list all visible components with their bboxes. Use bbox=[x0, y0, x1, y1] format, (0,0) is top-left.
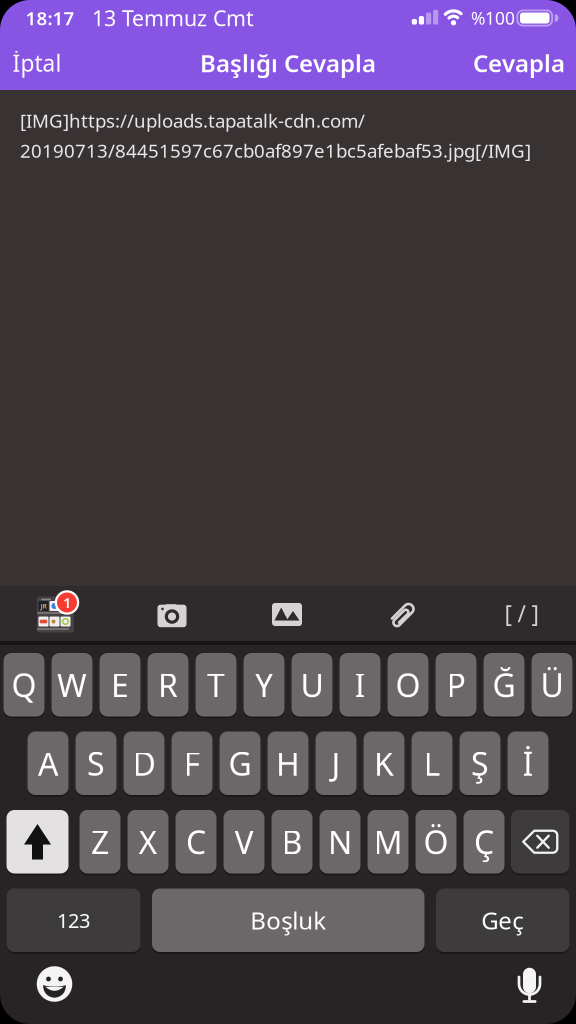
button[interactable]: Shift bbox=[6, 810, 68, 873]
staticText: %100 bbox=[471, 6, 515, 29]
staticText: Cevapla bbox=[473, 47, 565, 79]
staticText: 1 bbox=[63, 593, 71, 612]
staticText: E bbox=[111, 663, 129, 706]
button[interactable]: N bbox=[319, 810, 360, 873]
staticText: T bbox=[207, 663, 225, 706]
button[interactable]: E bbox=[99, 653, 140, 716]
button[interactable]: Geç bbox=[436, 888, 569, 952]
button[interactable]: R bbox=[147, 653, 188, 716]
staticText: Geç bbox=[481, 904, 524, 936]
button[interactable]: O bbox=[387, 653, 428, 716]
button[interactable]: B bbox=[271, 810, 312, 873]
staticText: B bbox=[281, 820, 302, 863]
staticText: [IMG]https://uploads.tapatalk-cdn.com/ bbox=[20, 108, 365, 133]
button[interactable]: İ bbox=[507, 731, 548, 795]
staticText: Ğ bbox=[492, 663, 515, 706]
button[interactable]: Q bbox=[3, 653, 44, 716]
staticText: İ bbox=[522, 742, 533, 784]
staticText: W bbox=[57, 663, 87, 706]
button[interactable]: I bbox=[339, 653, 380, 716]
button[interactable]: Cevapla bbox=[473, 47, 565, 79]
staticText: JR bbox=[40, 602, 46, 610]
staticText: R bbox=[158, 663, 178, 706]
button[interactable]: BBCode bbox=[504, 598, 538, 628]
button[interactable]: Son ekran görüntüsünü ekle bbox=[33, 591, 83, 635]
staticText: 123 bbox=[57, 907, 90, 934]
button[interactable]: Z bbox=[79, 810, 120, 873]
staticText: 18:17 bbox=[25, 6, 74, 30]
button[interactable]: H bbox=[267, 731, 308, 795]
staticText: N bbox=[328, 820, 352, 863]
staticText: K bbox=[374, 742, 394, 784]
staticText: 20190713/84451597c67cb0af897e1bc5afebaf5… bbox=[20, 138, 531, 163]
button[interactable]: Dosya ekle bbox=[389, 601, 415, 629]
staticText: G bbox=[228, 742, 251, 784]
staticText: L bbox=[423, 742, 440, 784]
staticText: İptal bbox=[12, 48, 61, 78]
button[interactable]: P bbox=[435, 653, 476, 716]
button[interactable]: Kamera bbox=[157, 602, 186, 627]
button[interactable]: Sil bbox=[511, 810, 569, 873]
button[interactable]: Ğ bbox=[483, 653, 524, 716]
button[interactable]: Emoji bbox=[36, 966, 72, 1002]
staticText: X bbox=[138, 820, 157, 863]
staticText: Ü bbox=[540, 663, 563, 706]
button[interactable]: Dikte bbox=[519, 968, 540, 1003]
button[interactable]: Ö bbox=[415, 810, 456, 873]
button[interactable]: U bbox=[291, 653, 332, 716]
button[interactable]: Ü bbox=[531, 653, 572, 716]
button[interactable]: K bbox=[363, 731, 404, 795]
staticText: O bbox=[395, 663, 420, 706]
button[interactable]: G bbox=[219, 731, 260, 795]
button[interactable]: F bbox=[171, 731, 212, 795]
staticText: D bbox=[132, 742, 155, 784]
staticText: P bbox=[446, 663, 465, 706]
staticText: Ö bbox=[423, 820, 448, 863]
button[interactable]: J bbox=[315, 731, 356, 795]
staticText: J bbox=[331, 742, 340, 784]
staticText: Ç bbox=[474, 820, 494, 863]
staticText: Y bbox=[255, 663, 273, 706]
button[interactable]: M bbox=[367, 810, 408, 873]
staticText: 13 Temmuz Cmt bbox=[92, 4, 254, 32]
button[interactable]: V bbox=[223, 810, 264, 873]
button[interactable]: W bbox=[51, 653, 92, 716]
staticText: A bbox=[38, 742, 58, 784]
button[interactable]: L bbox=[411, 731, 452, 795]
button[interactable]: D bbox=[123, 731, 164, 795]
staticText: Ş bbox=[471, 742, 489, 784]
button[interactable]: A bbox=[27, 731, 68, 795]
staticText: C bbox=[186, 820, 206, 863]
button[interactable]: Ş bbox=[459, 731, 500, 795]
staticText: Z bbox=[91, 820, 109, 863]
button[interactable]: X bbox=[127, 810, 168, 873]
staticText: I bbox=[354, 663, 365, 706]
button[interactable]: S bbox=[75, 731, 116, 795]
button[interactable]: İptal bbox=[12, 48, 61, 78]
button[interactable]: Boşluk bbox=[152, 888, 424, 952]
staticText: Boşluk bbox=[250, 904, 326, 936]
button[interactable]: Ç bbox=[463, 810, 504, 873]
button[interactable]: 123 bbox=[6, 888, 140, 952]
staticText: Q bbox=[11, 663, 36, 706]
button[interactable]: Fotoğraf bbox=[272, 603, 302, 626]
staticText: M bbox=[373, 820, 402, 863]
staticText: F bbox=[183, 742, 200, 784]
button[interactable]: C bbox=[175, 810, 216, 873]
staticText: [ / ] bbox=[504, 598, 538, 628]
staticText: S bbox=[87, 742, 105, 784]
staticText: U bbox=[300, 663, 323, 706]
staticText: H bbox=[276, 742, 300, 784]
staticText: Başlığı Cevapla bbox=[200, 47, 376, 79]
staticText: V bbox=[234, 820, 253, 863]
button[interactable]: T bbox=[195, 653, 236, 716]
button[interactable]: Y bbox=[243, 653, 284, 716]
